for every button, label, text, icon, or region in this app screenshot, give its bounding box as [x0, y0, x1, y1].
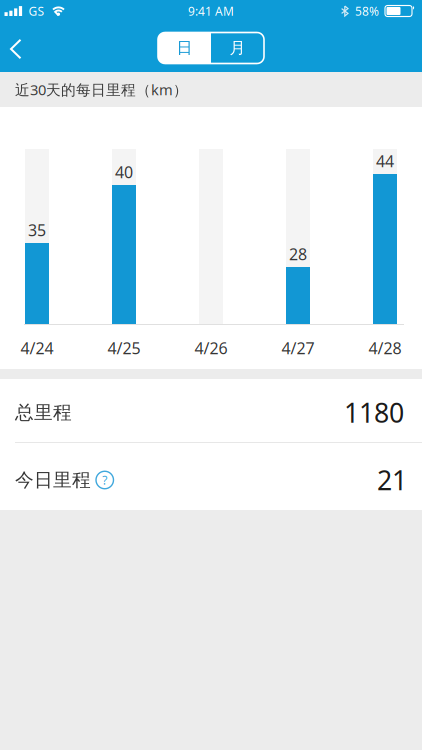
staticText: 4/28 — [368, 337, 401, 359]
staticText: 今日里程 — [15, 468, 91, 491]
staticText: 1180 — [344, 395, 404, 430]
staticText: 4/24 — [20, 337, 53, 359]
staticText: 44 — [376, 150, 394, 172]
button[interactable]: 月 — [211, 32, 264, 63]
staticText: 日 — [176, 38, 192, 58]
staticText: ? — [102, 472, 107, 488]
button[interactable]: 今日里程说明 — [91, 471, 113, 489]
staticText: 总里程 — [15, 401, 72, 424]
staticText: 近30天的每日里程（km） — [15, 80, 188, 99]
staticText: 月 — [229, 38, 245, 58]
staticText: 4/25 — [107, 337, 140, 359]
staticText: 58% — [355, 3, 379, 19]
staticText: 9:41 AM — [188, 3, 234, 19]
staticText: 35 — [28, 219, 46, 241]
staticText: 4/27 — [281, 337, 314, 359]
staticText: 4/26 — [194, 337, 227, 359]
staticText: GS — [28, 3, 44, 19]
staticText: 40 — [115, 161, 133, 183]
staticText: 28 — [289, 243, 307, 265]
button[interactable]: 日 — [158, 32, 211, 63]
button[interactable]: Back — [0, 22, 35, 72]
staticText: 21 — [377, 462, 407, 498]
